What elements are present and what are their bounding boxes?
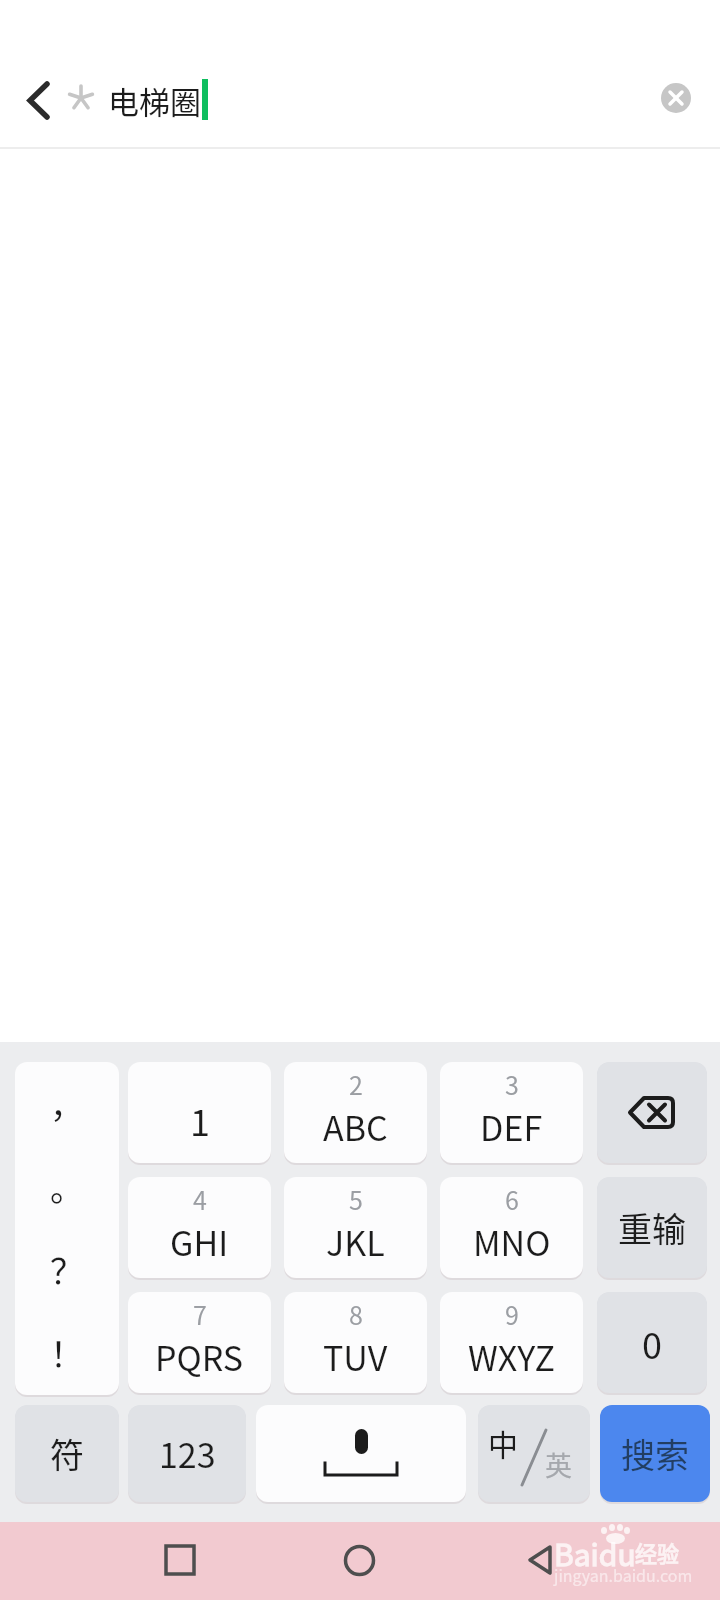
staticText: MNO	[473, 1217, 551, 1266]
staticText: 符	[50, 1429, 84, 1478]
button[interactable]: ！	[15, 1311, 119, 1394]
button[interactable]	[331, 1532, 387, 1588]
staticText: ？	[50, 1245, 84, 1294]
staticText: 。	[50, 1162, 84, 1211]
staticText: 9	[505, 1296, 519, 1330]
staticText: ！	[50, 1328, 84, 1377]
staticText: 中	[488, 1421, 518, 1464]
staticText: 4	[193, 1181, 207, 1215]
staticText: 1	[190, 1094, 210, 1146]
button[interactable]: 2	[284, 1062, 427, 1163]
staticText: 0	[642, 1317, 662, 1369]
button[interactable]: 4	[128, 1177, 271, 1278]
button[interactable]: 符	[15, 1405, 119, 1502]
staticText: 电梯圈	[108, 78, 201, 123]
staticText: jingyan.baidu.com	[554, 1563, 693, 1586]
staticText: 经验	[635, 1536, 680, 1568]
button[interactable]: ，	[15, 1062, 119, 1145]
button[interactable]	[512, 1532, 568, 1588]
staticText: 6	[505, 1181, 519, 1215]
staticText: Baidu	[554, 1531, 636, 1574]
button[interactable]: 8	[284, 1292, 427, 1393]
staticText: 123	[159, 1429, 216, 1478]
button[interactable]: 重输	[597, 1177, 707, 1278]
staticText: 3	[505, 1066, 519, 1100]
button[interactable]	[597, 1062, 707, 1163]
button[interactable]: 。	[15, 1145, 119, 1228]
button[interactable]: ？	[15, 1228, 119, 1311]
button[interactable]: 1	[128, 1062, 271, 1163]
button[interactable]	[661, 83, 691, 113]
staticText: 重输	[618, 1203, 686, 1252]
button[interactable]: 5	[284, 1177, 427, 1278]
button[interactable]	[10, 62, 66, 138]
button[interactable]: 9	[440, 1292, 583, 1393]
button[interactable]: 6	[440, 1177, 583, 1278]
button[interactable]: 0	[597, 1292, 707, 1393]
staticText: 8	[349, 1296, 363, 1330]
button[interactable]: 123	[128, 1405, 246, 1502]
staticText: 7	[193, 1296, 207, 1330]
staticText: JKL	[326, 1217, 385, 1266]
button[interactable]	[152, 1532, 208, 1588]
button[interactable]: 7	[128, 1292, 271, 1393]
staticText: WXYZ	[468, 1332, 555, 1381]
staticText: ABC	[323, 1102, 388, 1151]
staticText: GHI	[170, 1217, 229, 1266]
button[interactable]: 3	[440, 1062, 583, 1163]
staticText: 英	[545, 1445, 572, 1484]
button[interactable]: 中	[478, 1405, 590, 1502]
button[interactable]: 搜索	[600, 1405, 710, 1502]
staticText: 5	[349, 1181, 363, 1215]
button[interactable]	[256, 1405, 466, 1502]
staticText: 搜索	[621, 1429, 689, 1478]
staticText: PQRS	[155, 1332, 244, 1381]
staticText: ，	[50, 1079, 84, 1128]
staticText: DEF	[480, 1102, 543, 1151]
staticText: TUV	[323, 1332, 388, 1381]
staticText: 2	[349, 1066, 363, 1100]
